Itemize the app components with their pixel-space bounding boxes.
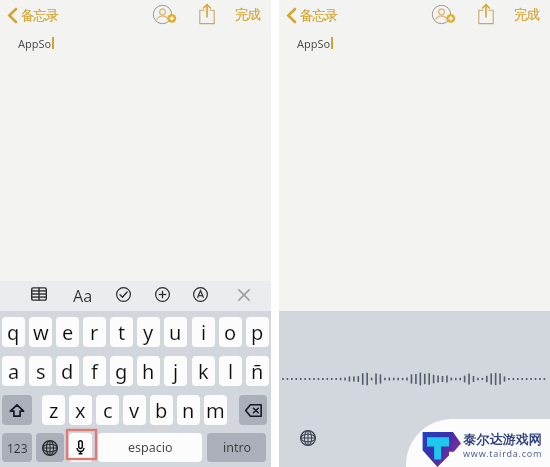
- button[interactable]: i: [192, 317, 215, 347]
- button[interactable]: Add people: [149, 1, 177, 29]
- button[interactable]: espacio: [98, 433, 202, 462]
- staticText: Aa: [73, 285, 93, 307]
- staticText: x: [75, 397, 86, 424]
- button[interactable]: Markup: [188, 282, 213, 307]
- button[interactable]: Share: [197, 2, 216, 25]
- staticText: u: [169, 319, 182, 346]
- staticText: AppSo: [18, 36, 52, 51]
- staticText: g: [115, 358, 128, 385]
- staticText: o: [224, 319, 237, 346]
- staticText: b: [155, 397, 168, 424]
- staticText: www.tairda.com: [463, 447, 543, 459]
- staticText: n: [182, 397, 195, 424]
- button[interactable]: d: [56, 356, 79, 386]
- button[interactable]: a: [2, 356, 25, 386]
- staticText: c: [103, 397, 113, 424]
- staticText: y: [143, 319, 154, 346]
- button[interactable]: g: [110, 356, 133, 386]
- staticText: j: [173, 358, 179, 385]
- button[interactable]: r: [83, 317, 106, 347]
- staticText: d: [61, 358, 74, 385]
- button[interactable]: 完成: [231, 1, 264, 27]
- button[interactable]: Globe: [36, 433, 64, 462]
- button[interactable]: y: [137, 317, 160, 347]
- staticText: z: [49, 397, 59, 424]
- staticText: 备忘录: [300, 7, 337, 24]
- button[interactable]: l: [219, 356, 242, 386]
- staticText: 泰尔达游戏网: [463, 431, 542, 447]
- staticText: h: [142, 358, 155, 385]
- staticText: e: [62, 319, 74, 346]
- button[interactable]: Change language: [300, 430, 316, 446]
- button[interactable]: Add attachment: [150, 282, 175, 307]
- staticText: k: [198, 358, 209, 385]
- button[interactable]: intro: [207, 433, 266, 462]
- button[interactable]: b: [150, 395, 173, 425]
- staticText: intro: [223, 439, 251, 456]
- staticText: AppSo: [297, 36, 331, 51]
- button[interactable]: j: [164, 356, 187, 386]
- staticText: r: [90, 319, 99, 346]
- staticText: 123: [7, 440, 28, 456]
- button[interactable]: Aa: [70, 282, 96, 310]
- button[interactable]: Checklist: [111, 282, 136, 307]
- staticText: p: [251, 319, 264, 346]
- button[interactable]: m: [204, 395, 227, 425]
- button[interactable]: o: [219, 317, 242, 347]
- staticText: w: [33, 319, 49, 346]
- button[interactable]: c: [96, 395, 119, 425]
- staticText: espacio: [128, 439, 173, 456]
- button[interactable]: Share: [476, 2, 495, 25]
- button[interactable]: h: [137, 356, 160, 386]
- button[interactable]: Close keyboard: [232, 283, 256, 307]
- button[interactable]: z: [42, 395, 65, 425]
- button[interactable]: Backspace: [239, 395, 267, 425]
- button[interactable]: ñ: [246, 356, 269, 386]
- staticText: v: [129, 397, 140, 424]
- button[interactable]: Shift: [2, 395, 32, 425]
- staticText: i: [201, 319, 207, 346]
- button[interactable]: t: [110, 317, 133, 347]
- button[interactable]: f: [83, 356, 106, 386]
- staticText: a: [8, 358, 20, 385]
- staticText: q: [7, 319, 20, 346]
- staticText: s: [36, 358, 46, 385]
- button[interactable]: k: [192, 356, 215, 386]
- staticText: 备忘录: [21, 7, 58, 24]
- button[interactable]: s: [29, 356, 52, 386]
- button[interactable]: q: [2, 317, 25, 347]
- button[interactable]: e: [56, 317, 79, 347]
- staticText: l: [228, 358, 234, 385]
- button[interactable]: p: [246, 317, 269, 347]
- staticText: ñ: [251, 358, 264, 385]
- button[interactable]: 备忘录: [5, 2, 64, 28]
- button[interactable]: n: [177, 395, 200, 425]
- staticText: 完成: [514, 6, 539, 23]
- button[interactable]: 备忘录: [284, 2, 343, 28]
- button[interactable]: u: [164, 317, 187, 347]
- button[interactable]: x: [69, 395, 92, 425]
- button[interactable]: Dictate: [69, 433, 92, 462]
- button[interactable]: v: [123, 395, 146, 425]
- button[interactable]: 完成: [510, 1, 543, 27]
- staticText: m: [206, 397, 225, 424]
- button[interactable]: w: [29, 317, 52, 347]
- button[interactable]: 123: [2, 433, 32, 462]
- staticText: f: [91, 358, 98, 385]
- button[interactable]: Table: [26, 282, 52, 306]
- button[interactable]: Add people: [428, 1, 456, 29]
- staticText: 完成: [235, 6, 260, 23]
- staticText: t: [118, 319, 126, 346]
